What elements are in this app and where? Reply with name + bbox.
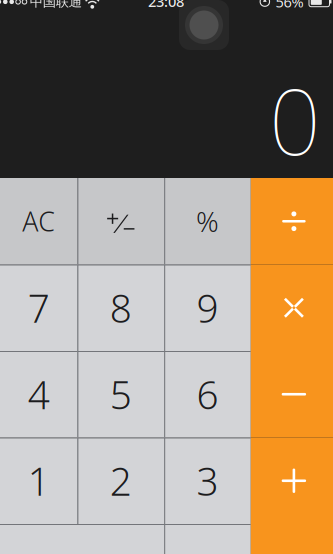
button[interactable]: % <box>164 178 251 264</box>
staticText: % <box>196 203 219 240</box>
button[interactable]: 4 <box>0 351 77 437</box>
button[interactable]: 6 <box>164 351 251 437</box>
button[interactable]: 1 <box>0 437 77 524</box>
button[interactable] <box>251 264 333 351</box>
button[interactable]: 3 <box>164 437 251 524</box>
button[interactable]: 2 <box>77 437 164 524</box>
staticText: 6 <box>196 369 218 420</box>
staticText: 1 <box>28 455 50 506</box>
staticText: 中国联通 <box>30 0 82 10</box>
button[interactable]: 7 <box>0 264 77 351</box>
button[interactable]: 9 <box>164 264 251 351</box>
button[interactable] <box>251 351 333 437</box>
button[interactable]: AC <box>0 178 77 264</box>
button[interactable]: 5 <box>77 351 164 437</box>
staticText: 8 <box>110 282 132 333</box>
staticText: 5 <box>110 369 132 420</box>
staticText: 9 <box>196 282 218 333</box>
staticText: 2 <box>110 455 132 506</box>
staticText: 3 <box>196 455 218 506</box>
button[interactable] <box>164 524 251 554</box>
staticText: AC <box>22 203 55 239</box>
button[interactable] <box>251 178 333 264</box>
button[interactable] <box>77 178 164 264</box>
staticText: 0 <box>269 60 321 180</box>
button[interactable] <box>251 437 333 524</box>
staticText: 4 <box>28 369 50 420</box>
staticText: 56% <box>275 0 303 11</box>
staticText: 23:08 <box>148 0 184 11</box>
button[interactable]: 8 <box>77 264 164 351</box>
staticText: 7 <box>28 282 50 333</box>
button[interactable] <box>0 524 164 554</box>
